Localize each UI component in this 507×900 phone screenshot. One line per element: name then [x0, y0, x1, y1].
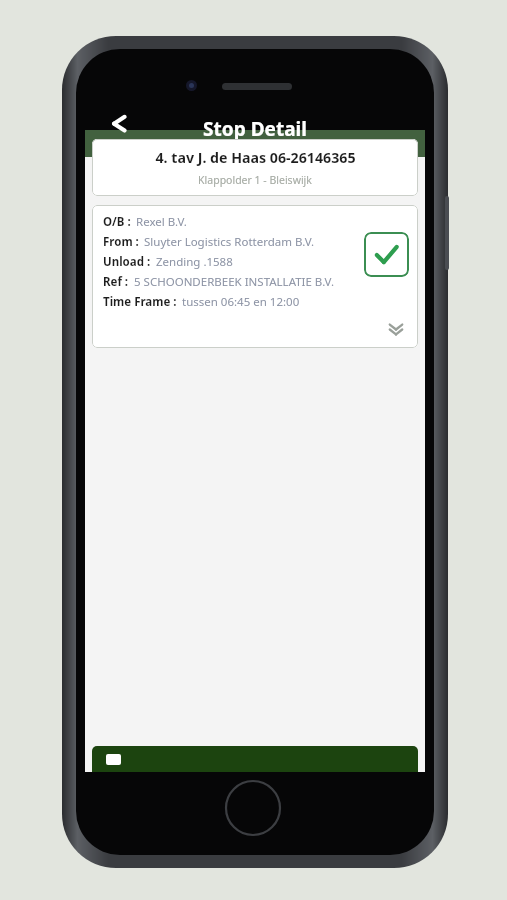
staticText: 4. tav J. de Haas 06-26146365 — [155, 148, 356, 167]
staticText: O/B : — [103, 214, 131, 230]
button[interactable]: Back — [97, 108, 137, 135]
button[interactable]: O/B : — [92, 205, 418, 348]
staticText: Time Frame : — [103, 294, 177, 310]
button[interactable]: Expand details — [383, 316, 409, 342]
staticText: 5 SCHOONDERBEEK INSTALLATIE B.V. — [134, 274, 335, 290]
staticText: tussen 06:45 en 12:00 — [182, 294, 300, 310]
button[interactable] — [92, 746, 418, 772]
staticText: Rexel B.V. — [136, 214, 187, 230]
staticText: Ref : — [103, 274, 129, 290]
staticText: Sluyter Logistics Rotterdam B.V. — [144, 234, 315, 250]
staticText: Zending .1588 — [156, 254, 233, 270]
button[interactable]: Confirm stop — [364, 232, 409, 277]
staticText: Stop Detail — [203, 116, 307, 142]
staticText: Klappolder 1 - Bleiswijk — [198, 173, 312, 187]
button[interactable]: 4. tav J. de Haas 06-26146365 — [92, 139, 418, 196]
staticText: From : — [103, 234, 139, 250]
staticText: Unload : — [103, 254, 151, 270]
